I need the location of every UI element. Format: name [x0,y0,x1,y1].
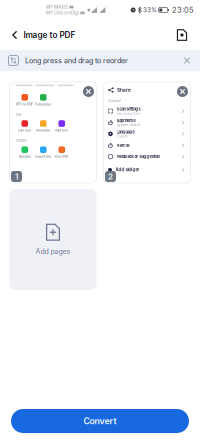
staticText: Add text [55,129,68,132]
staticText: General [108,98,121,103]
staticText: MY MAXIS [46,4,68,10]
staticText: System default [116,123,140,127]
button[interactable]: Saved files [168,20,196,50]
staticText: ask every time [116,111,140,115]
staticText: Edit tool [18,129,31,132]
button[interactable]: PPT to PDF [9,82,96,183]
button[interactable]: Convert [11,409,189,433]
staticText: PPT to PDF [16,102,33,106]
staticText: Convert [83,416,116,426]
staticText: Edit [15,112,21,117]
staticText: Rate us [116,143,129,148]
staticText: Reorder [19,155,31,158]
staticText: MY CelcomDigi [46,10,79,16]
staticText: Long press and drag to reorder [25,56,128,65]
staticText: 2 [108,172,113,181]
staticText: Image to PDF [23,30,75,40]
button[interactable]: Dismiss [178,51,196,70]
staticText: App theme [116,118,135,123]
staticText: Add widget [115,167,138,172]
staticText: 33% [143,6,157,14]
button[interactable]: Share [103,82,190,183]
staticText: Import file [35,155,51,158]
staticText: Add pages [35,247,70,256]
button[interactable]: Add pages [9,189,96,290]
staticText: Share [117,87,131,93]
staticText: Annotate [36,129,50,132]
staticText: Scan settings [116,107,140,111]
staticText: Language [116,129,134,134]
staticText: Feedback or suggestion [116,154,159,159]
staticText: English [116,134,128,138]
staticText: Templates [35,102,52,106]
staticText: Others [15,138,26,143]
button[interactable]: Image to PDF [0,20,83,50]
staticText: Print PDF [55,155,69,158]
staticText: 1 [15,172,18,181]
staticText: 23:05 [172,5,194,14]
